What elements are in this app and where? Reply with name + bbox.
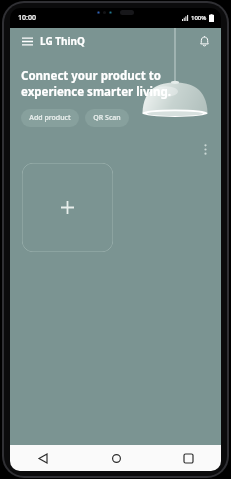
button[interactable]: Recent apps: [177, 447, 199, 469]
staticText: 10:00: [18, 13, 36, 23]
button[interactable]: Add product: [21, 109, 79, 127]
button[interactable]: QR Scan: [85, 109, 129, 127]
button[interactable]: Notifications: [193, 30, 215, 52]
button[interactable]: [22, 163, 113, 252]
button[interactable]: Home: [105, 447, 127, 469]
button[interactable]: Open navigation menu: [17, 31, 37, 51]
staticText: Add product: [29, 113, 71, 123]
staticText: QR Scan: [93, 113, 121, 123]
staticText: LG ThinQ: [40, 34, 85, 48]
staticText: 100%: [191, 14, 207, 22]
button[interactable]: More options: [197, 141, 213, 157]
staticText: Connect your product to experience smart…: [21, 68, 187, 99]
button[interactable]: Back: [32, 447, 54, 469]
